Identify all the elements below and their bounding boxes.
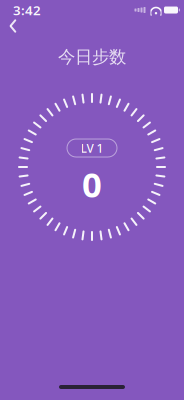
staticText: 今日步数 — [58, 46, 126, 68]
staticText: 0 — [82, 161, 102, 207]
staticText: 3:42 — [13, 1, 41, 19]
staticText: LV 1 — [80, 140, 103, 156]
button[interactable]: Back — [0, 11, 28, 41]
